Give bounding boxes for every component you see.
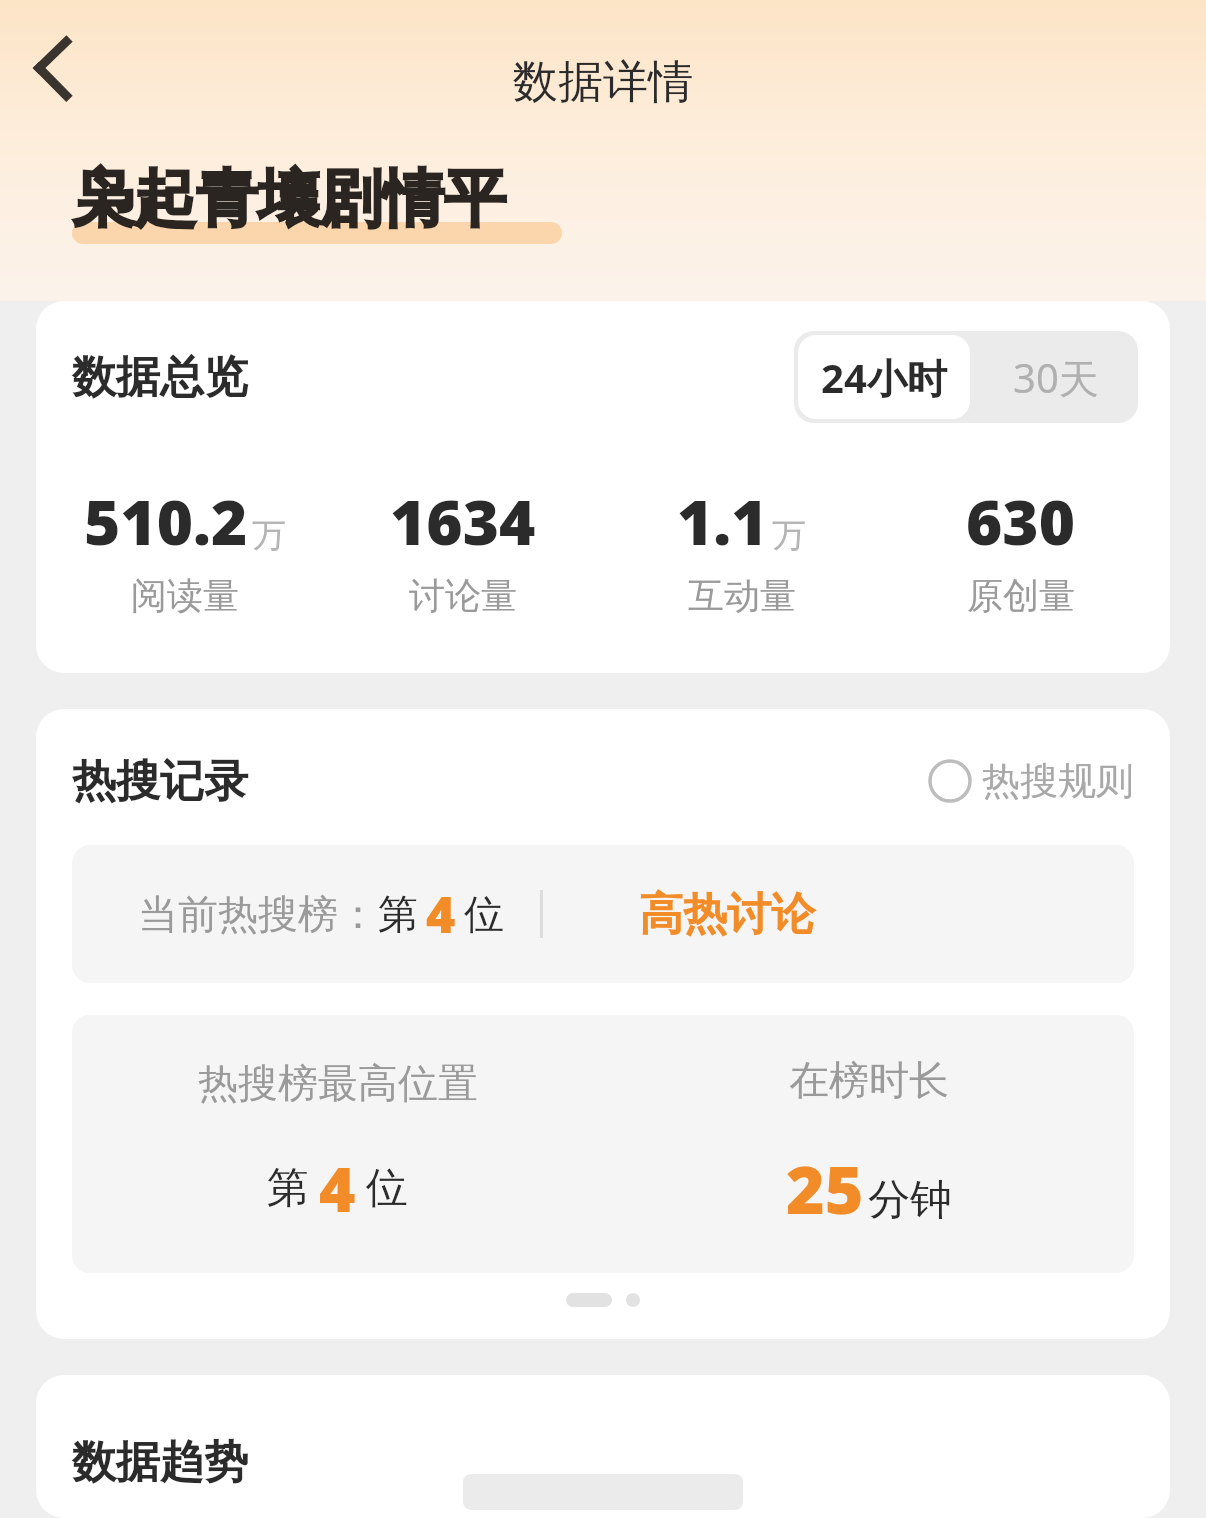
staticText: 630 <box>966 479 1075 563</box>
staticText: 热搜榜最高位置 <box>198 1058 478 1108</box>
staticText: 热搜规则 <box>982 757 1134 805</box>
staticText: 分钟 <box>868 1174 952 1227</box>
button[interactable]: 热搜榜最高位置 <box>72 1015 1134 1273</box>
staticText: 当前热搜榜： <box>138 889 378 939</box>
button[interactable]: 24小时 <box>798 335 970 419</box>
staticText: 24小时 <box>821 350 947 405</box>
staticText: 数据趋势 <box>72 1435 248 1490</box>
staticText: 数据详情 <box>513 54 693 111</box>
staticText: 万 <box>252 514 286 557</box>
staticText: 互动量 <box>688 573 796 618</box>
staticText: 4 <box>426 880 456 948</box>
staticText: 第 <box>378 889 418 939</box>
staticText: 阅读量 <box>131 573 239 618</box>
staticText: 1.1 <box>677 479 768 563</box>
staticText: 1634 <box>390 479 536 563</box>
button[interactable]: 510.2 <box>46 479 324 618</box>
button[interactable]: 当前热搜榜： <box>72 845 1134 983</box>
staticText: 30天 <box>1013 350 1099 405</box>
staticText: 枭起青壤剧情平 <box>72 160 506 238</box>
staticText: 位 <box>464 889 504 939</box>
button[interactable]: 1.1 <box>602 479 881 618</box>
staticText: 25 <box>786 1143 864 1233</box>
staticText: 万 <box>772 514 806 557</box>
button[interactable]: 1634 <box>324 479 602 618</box>
staticText: 原创量 <box>967 573 1075 618</box>
staticText: 4 <box>319 1146 356 1230</box>
staticText: 位 <box>366 1162 408 1215</box>
button[interactable]: 热搜规则 <box>922 751 1140 811</box>
staticText: 第 <box>267 1162 309 1215</box>
staticText: 在榜时长 <box>789 1055 949 1105</box>
staticText: 510.2 <box>84 479 248 563</box>
staticText: 数据总览 <box>72 350 248 405</box>
button[interactable]: Back <box>12 26 96 110</box>
button[interactable]: 630 <box>881 479 1160 618</box>
staticText: 热搜记录 <box>72 754 248 809</box>
staticText: 讨论量 <box>409 573 517 618</box>
button[interactable]: 30天 <box>974 331 1138 423</box>
staticText: 高热讨论 <box>639 887 815 942</box>
